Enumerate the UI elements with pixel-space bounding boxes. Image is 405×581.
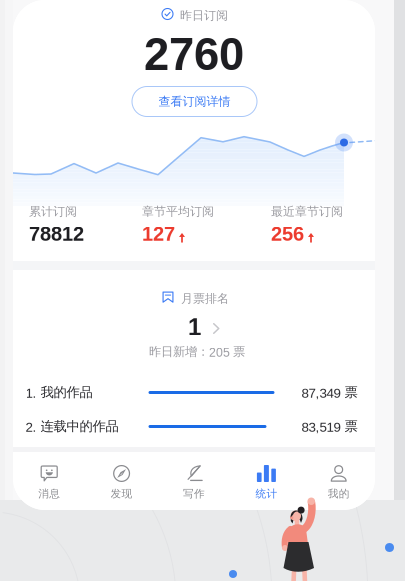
staticText: 127 xyxy=(142,223,175,245)
staticText: 查看订阅详情 xyxy=(158,94,230,109)
staticText: 83,519 票 xyxy=(301,418,357,435)
button[interactable]: 1. 我的作品 xyxy=(25,384,357,400)
staticText: 78812 xyxy=(29,223,84,245)
staticText: 消息 xyxy=(38,487,60,500)
staticText: 昨日新增：205 票 xyxy=(149,344,245,359)
staticText: 1 xyxy=(188,314,201,340)
staticText: 1. 我的作品 xyxy=(25,384,92,401)
button[interactable]: 查看订阅详情 xyxy=(132,86,257,116)
staticText: 87,349 票 xyxy=(301,384,357,401)
staticText: 最近章节订阅 xyxy=(271,204,343,219)
staticText: 月票排名 xyxy=(181,291,229,306)
staticText: 2. 连载中的作品 xyxy=(25,418,118,435)
staticText: 256 xyxy=(271,223,304,245)
button[interactable]: 发现 xyxy=(85,452,158,514)
button[interactable]: 写作 xyxy=(158,452,230,514)
button[interactable]: 2. 连载中的作品 xyxy=(25,418,357,434)
staticText: 发现 xyxy=(111,487,133,500)
button[interactable]: 消息 xyxy=(13,452,85,514)
button[interactable]: 统计 xyxy=(230,452,303,514)
staticText: 累计订阅 xyxy=(29,204,77,219)
staticText: 2760 xyxy=(144,29,244,80)
button[interactable]: 1 xyxy=(188,315,232,339)
button[interactable]: 我的 xyxy=(303,452,375,514)
staticText: 昨日订阅 xyxy=(180,8,228,23)
staticText: 章节平均订阅 xyxy=(142,204,214,219)
staticText: 写作 xyxy=(183,487,205,500)
staticText: 统计 xyxy=(255,487,277,500)
staticText: 我的 xyxy=(328,487,350,500)
